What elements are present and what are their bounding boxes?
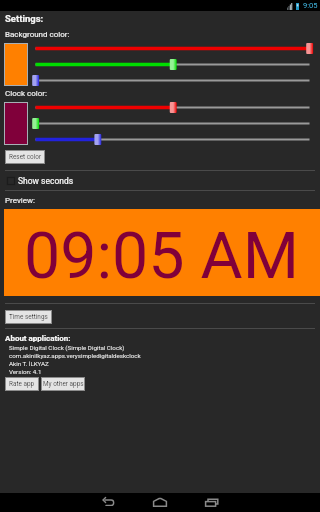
button[interactable]: Colour slider bbox=[0, 71, 320, 85]
staticText: Preview: bbox=[5, 196, 35, 205]
button[interactable]: Reset color bbox=[6, 151, 44, 163]
button[interactable]: Colour slider bbox=[0, 130, 320, 144]
button[interactable]: Time settings bbox=[6, 311, 51, 323]
staticText: Time settings bbox=[9, 313, 48, 321]
button[interactable]: Back bbox=[95, 493, 127, 512]
staticText: Background color: bbox=[5, 30, 70, 39]
staticText: Settings: bbox=[5, 13, 44, 24]
button[interactable]: Home bbox=[146, 493, 178, 512]
staticText: Rate app bbox=[9, 380, 35, 388]
staticText: Version: 4.1 bbox=[9, 368, 42, 375]
button[interactable]: Colour slider bbox=[0, 116, 320, 130]
staticText: Reset color bbox=[9, 153, 42, 161]
button[interactable]: Show seconds bbox=[0, 171, 320, 190]
staticText: 9:05 bbox=[303, 1, 318, 10]
button[interactable]: Recents bbox=[197, 493, 229, 512]
button[interactable]: 09:05 AM bbox=[4, 209, 320, 296]
button[interactable]: Rate app bbox=[6, 378, 38, 390]
button[interactable]: Colour slider bbox=[0, 57, 320, 71]
staticText: Simple Digital Clock (Simple Digital Clo… bbox=[9, 344, 125, 351]
staticText: Akin T. İLKYAZ bbox=[9, 360, 49, 367]
staticText: Clock color: bbox=[5, 89, 47, 98]
button[interactable]: Colour slider bbox=[0, 102, 320, 116]
staticText: com.akinilkyaz.apps.verysimpledigitaldes… bbox=[9, 352, 141, 359]
staticText: About application: bbox=[5, 334, 71, 343]
staticText: My other apps bbox=[43, 380, 84, 388]
button[interactable]: My other apps bbox=[42, 378, 84, 390]
staticText: 09:05 AM bbox=[24, 218, 300, 294]
button[interactable]: Colour slider bbox=[0, 43, 320, 57]
staticText: Show seconds bbox=[18, 176, 74, 186]
